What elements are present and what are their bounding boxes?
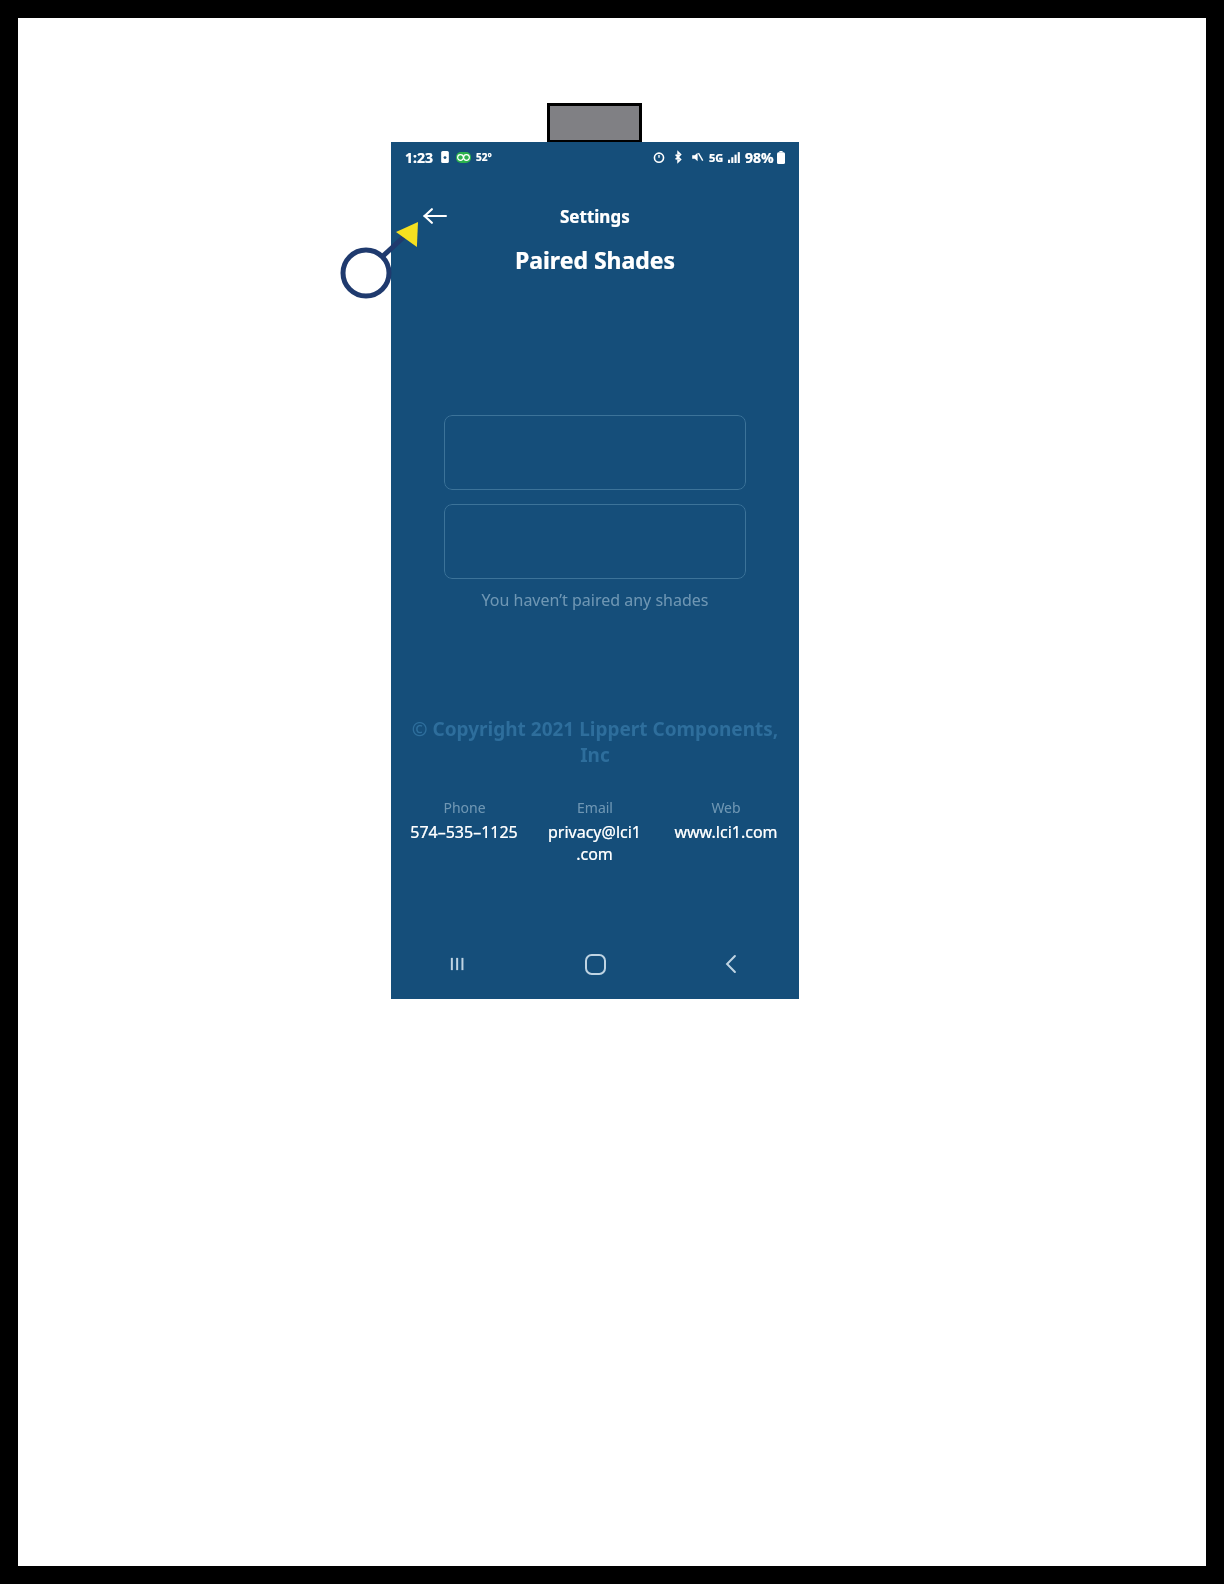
staticText: 574–535–1125 bbox=[410, 821, 518, 843]
button[interactable] bbox=[444, 504, 746, 579]
button[interactable]: Recent apps bbox=[391, 939, 527, 989]
button[interactable]: Home bbox=[527, 939, 663, 989]
button[interactable]: Phone bbox=[399, 798, 529, 843]
staticText: 98% bbox=[745, 148, 774, 167]
staticText: Settings bbox=[560, 205, 630, 228]
button[interactable]: Email bbox=[529, 798, 660, 865]
staticText: Web bbox=[711, 798, 741, 817]
staticText: 1:23 bbox=[405, 148, 433, 167]
staticText: 52° bbox=[476, 150, 492, 164]
button[interactable]: Back bbox=[663, 939, 799, 989]
staticText: 5G bbox=[709, 150, 724, 165]
staticText: Email bbox=[577, 798, 613, 817]
staticText: Phone bbox=[443, 798, 486, 817]
staticText: privacy@lci1 .com bbox=[548, 821, 641, 865]
staticText: www.lci1.com bbox=[674, 821, 778, 843]
button[interactable]: Web bbox=[660, 798, 791, 843]
button[interactable]: Back bbox=[415, 196, 455, 236]
button[interactable] bbox=[444, 415, 746, 490]
staticText: © Copyright 2021 Lippert Components, Inc bbox=[397, 716, 793, 768]
staticText: Paired Shades bbox=[391, 244, 799, 275]
staticText: You haven’t paired any shades bbox=[391, 589, 799, 611]
